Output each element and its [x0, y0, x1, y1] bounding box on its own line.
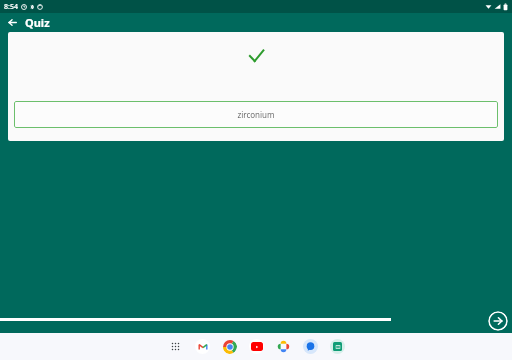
- staticText: 8:54: [4, 2, 18, 12]
- button[interactable]: All apps: [168, 339, 183, 354]
- button[interactable]: Next: [488, 311, 508, 331]
- button[interactable]: Gmail: [195, 339, 210, 354]
- button[interactable]: Messages: [303, 339, 318, 354]
- button[interactable]: App: [330, 339, 345, 354]
- staticText: zirconium: [237, 109, 275, 120]
- button[interactable]: Photos: [276, 339, 291, 354]
- button[interactable]: YouTube: [249, 339, 264, 354]
- button[interactable]: zirconium: [14, 101, 498, 128]
- staticText: Quiz: [25, 15, 50, 30]
- button[interactable]: Chrome: [222, 339, 237, 354]
- button[interactable]: Back: [5, 15, 19, 29]
